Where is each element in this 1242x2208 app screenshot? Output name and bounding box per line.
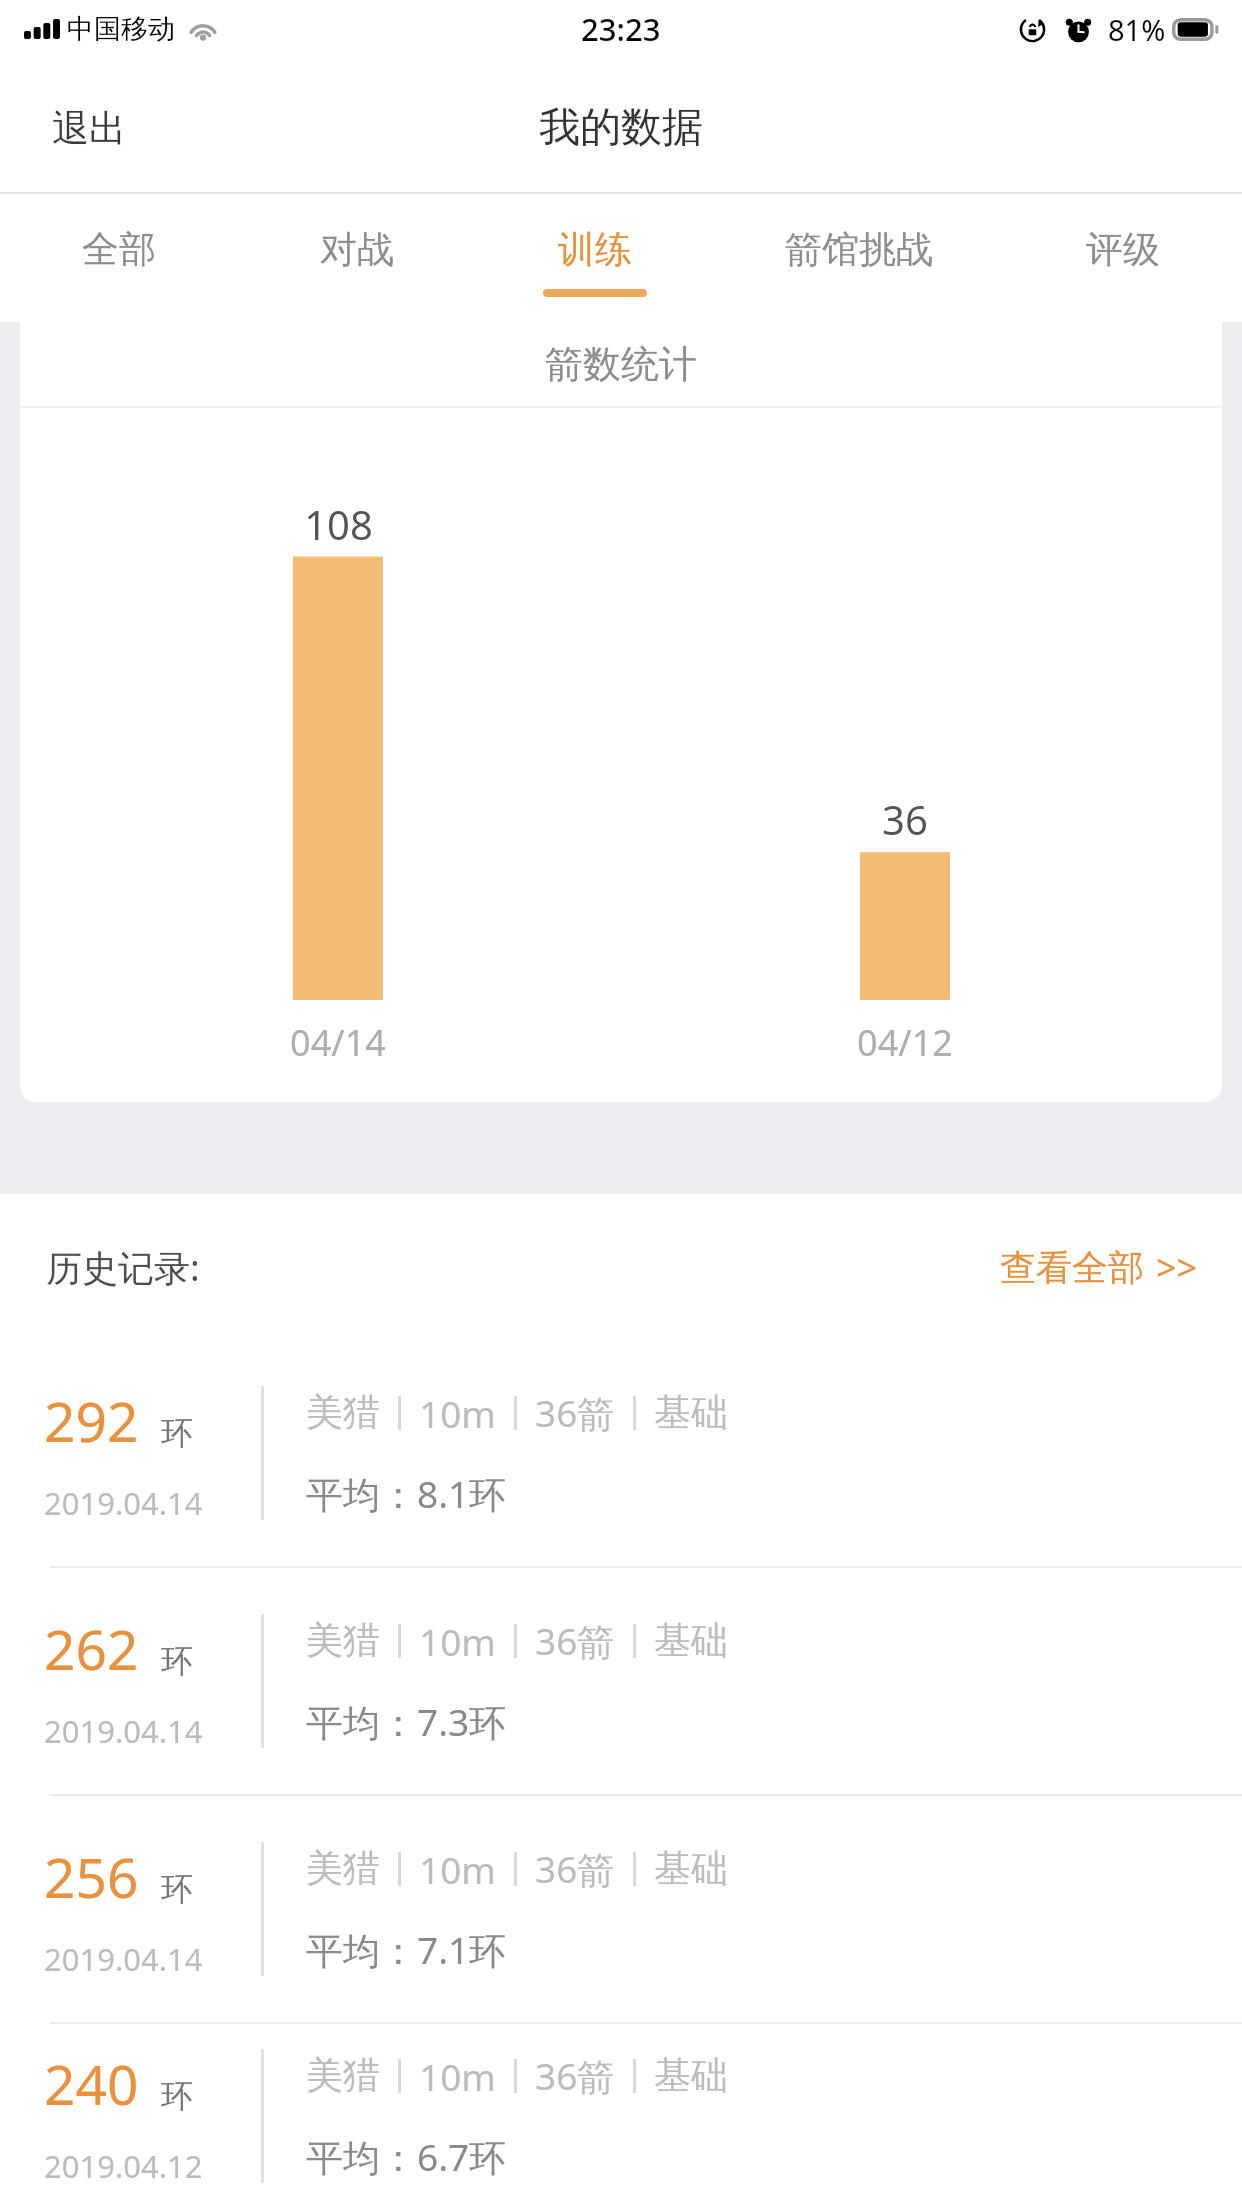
staticText: 环 (161, 1413, 193, 1453)
staticText: 2019.04.12 (44, 2145, 203, 2187)
staticText: 10m (419, 2051, 496, 2101)
staticText: 美猎 (306, 1617, 380, 1664)
staticText: 基础 (654, 1389, 728, 1436)
staticText: 2019.04.14 (44, 1938, 203, 1980)
button[interactable]: 评级 (1004, 194, 1242, 322)
staticText: 36箭 (535, 1843, 615, 1894)
staticText: 108 (304, 497, 373, 551)
staticText: 256 (44, 1839, 139, 1914)
staticText: 中国移动 (67, 12, 175, 46)
staticText: 10m (419, 1388, 496, 1438)
staticText: 平均：8.1环 (306, 1468, 507, 1519)
staticText: 历史记录: (46, 1243, 200, 1292)
staticText: 评级 (1086, 226, 1160, 273)
staticText: 262 (44, 1611, 139, 1686)
button[interactable]: 256 (0, 1796, 1242, 2022)
staticText: 10m (419, 1616, 496, 1666)
button[interactable]: 查看全部 (970, 1225, 1242, 1310)
staticText: 美猎 (306, 2052, 380, 2099)
staticText: 全部 (82, 226, 156, 273)
staticText: 美猎 (306, 1389, 380, 1436)
staticText: 36箭 (535, 1387, 615, 1438)
other: Alarm set (1064, 15, 1093, 44)
staticText: 10m (419, 1844, 496, 1894)
staticText: 训练 (558, 226, 632, 273)
staticText: 36箭 (535, 2050, 615, 2101)
staticText: 04/14 (290, 1018, 386, 1067)
button[interactable]: 292 (0, 1340, 1242, 1566)
staticText: 2019.04.14 (44, 1482, 203, 1524)
staticText: 240 (44, 2046, 139, 2121)
button[interactable]: 退出 (0, 83, 166, 174)
other: Battery 81 percent (1172, 18, 1218, 41)
staticText: 36 (882, 792, 928, 846)
staticText: 36箭 (535, 1615, 615, 1666)
staticText: 23:23 (581, 8, 661, 50)
button[interactable]: 箭馆挑战 (714, 194, 1004, 322)
staticText: 04/12 (857, 1018, 953, 1067)
button[interactable]: 240 (0, 2024, 1242, 2208)
other: Wi-Fi (188, 18, 218, 41)
button[interactable]: 训练 (476, 194, 714, 322)
staticText: 对战 (320, 226, 394, 273)
staticText: 平均：7.3环 (306, 1696, 507, 1747)
staticText: 箭馆挑战 (785, 226, 933, 273)
button[interactable]: 262 (0, 1568, 1242, 1794)
staticText: 81% (1108, 10, 1166, 49)
other: Rotation lock (1018, 15, 1047, 44)
staticText: 平均：6.7环 (306, 2131, 507, 2182)
staticText: 查看全部 (1000, 1245, 1144, 1290)
staticText: 2019.04.14 (44, 1710, 203, 1752)
staticText: >> (1156, 1243, 1198, 1292)
staticText: 环 (161, 2076, 193, 2116)
staticText: 环 (161, 1869, 193, 1909)
staticText: 平均：7.1环 (306, 1924, 507, 1975)
staticText: 基础 (654, 2052, 728, 2099)
staticText: 我的数据 (539, 102, 703, 154)
staticText: 基础 (654, 1845, 728, 1892)
staticText: 基础 (654, 1617, 728, 1664)
other: Signal strength (24, 19, 60, 39)
staticText: 箭数统计 (545, 340, 697, 388)
button[interactable]: 对战 (238, 194, 476, 322)
staticText: 美猎 (306, 1845, 380, 1892)
staticText: 环 (161, 1641, 193, 1681)
staticText: 292 (44, 1383, 139, 1458)
staticText: 退出 (52, 105, 126, 152)
button[interactable]: 全部 (0, 194, 238, 322)
